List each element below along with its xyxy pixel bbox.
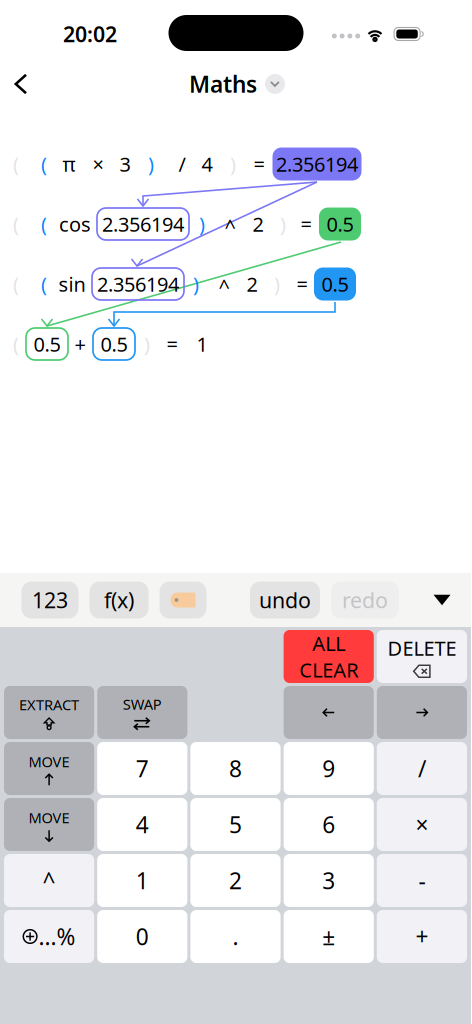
staticText: /: [418, 753, 426, 783]
staticText: 0.5: [100, 331, 127, 357]
button[interactable]: Delete: [377, 630, 467, 683]
staticText: (: [13, 211, 19, 237]
button[interactable]: 9: [284, 742, 374, 795]
button[interactable]: Extract: [4, 686, 94, 739]
staticText: 0.5: [326, 211, 353, 237]
staticText: =: [296, 271, 307, 297]
button[interactable]: 3: [284, 854, 374, 907]
button[interactable]: Move up: [4, 742, 94, 795]
staticText: ): [199, 211, 205, 237]
button[interactable]: Back: [0, 62, 44, 106]
staticText: cos: [59, 211, 91, 237]
staticText: (: [41, 271, 47, 297]
staticText: ): [148, 151, 154, 177]
staticText: Maths: [189, 69, 257, 99]
staticText: f(x): [104, 586, 134, 614]
staticText: ): [193, 271, 199, 297]
staticText: ): [274, 271, 280, 297]
staticText: 8: [229, 753, 242, 783]
button[interactable]: ×: [377, 798, 467, 851]
button[interactable]: Move right: [377, 686, 467, 739]
button[interactable]: 7: [97, 742, 187, 795]
staticText: +: [415, 921, 428, 951]
button[interactable]: Move left: [284, 686, 374, 739]
staticText: (: [41, 211, 47, 237]
button[interactable]: 0: [97, 910, 187, 963]
staticText: ): [144, 331, 150, 357]
staticText: 3: [119, 151, 130, 177]
button[interactable]: 8: [190, 742, 281, 795]
staticText: 6: [322, 809, 335, 839]
staticText: redo: [342, 586, 388, 614]
staticText: (: [41, 151, 47, 177]
staticText: 0: [136, 921, 149, 951]
staticText: (: [13, 151, 19, 177]
staticText: ±: [322, 921, 335, 951]
button[interactable]: Swap: [97, 686, 187, 739]
button[interactable]: f(x): [89, 581, 148, 618]
button[interactable]: More operators: [4, 910, 94, 963]
button[interactable]: -: [377, 854, 467, 907]
staticText: 123: [32, 586, 68, 614]
staticText: 2.356194: [97, 271, 179, 297]
button[interactable]: 4: [97, 798, 187, 851]
button[interactable]: Maths: [183, 60, 291, 108]
staticText: 20:02: [63, 20, 117, 48]
staticText: 2: [229, 865, 242, 895]
button[interactable]: Hide keyboard: [420, 578, 464, 622]
button[interactable]: 6: [284, 798, 374, 851]
staticText: 5: [229, 809, 242, 839]
staticText: MOVE: [29, 752, 70, 771]
staticText: 2: [252, 211, 263, 237]
staticText: 0.5: [33, 331, 60, 357]
staticText: ^: [43, 865, 56, 895]
button[interactable]: ^: [4, 854, 94, 907]
staticText: ): [230, 151, 236, 177]
staticText: (: [13, 331, 19, 357]
staticText: (: [13, 271, 19, 297]
staticText: 9: [322, 753, 335, 783]
staticText: DELETE: [387, 635, 456, 661]
staticText: 3: [322, 865, 335, 895]
staticText: -: [418, 865, 425, 895]
button[interactable]: ALL: [284, 630, 374, 683]
staticText: 1: [196, 331, 207, 357]
button[interactable]: 2: [190, 854, 281, 907]
staticText: .: [232, 921, 238, 951]
staticText: =: [166, 331, 177, 357]
button[interactable]: Tag: [159, 581, 206, 618]
staticText: SWAP: [123, 694, 162, 714]
staticText: ): [280, 211, 286, 237]
staticText: EXTRACT: [19, 695, 79, 714]
staticText: π: [62, 151, 75, 177]
button[interactable]: /: [377, 742, 467, 795]
button[interactable]: undo: [250, 581, 320, 618]
staticText: 0.5: [321, 271, 348, 297]
staticText: 1: [136, 865, 149, 895]
staticText: ×: [415, 809, 428, 839]
staticText: 4: [201, 151, 212, 177]
button[interactable]: +: [377, 910, 467, 963]
button[interactable]: 123: [21, 581, 78, 618]
button[interactable]: redo: [331, 581, 399, 618]
staticText: ALL: [312, 630, 345, 656]
staticText: CLEAR: [299, 656, 358, 683]
staticText: sin: [58, 271, 85, 297]
staticText: ...%: [39, 921, 76, 951]
staticText: 2.356194: [276, 151, 358, 177]
staticText: ^: [224, 213, 235, 239]
button[interactable]: .: [190, 910, 281, 963]
button[interactable]: 1: [97, 854, 187, 907]
staticText: /: [178, 151, 185, 177]
staticText: MOVE: [29, 808, 70, 827]
staticText: =: [300, 211, 311, 237]
staticText: 2.356194: [102, 211, 184, 237]
staticText: 2: [246, 271, 257, 297]
button[interactable]: Move down: [4, 798, 94, 851]
staticText: ×: [92, 151, 103, 177]
button[interactable]: 5: [190, 798, 281, 851]
button[interactable]: ±: [284, 910, 374, 963]
staticText: 7: [136, 753, 149, 783]
staticText: +: [74, 331, 85, 357]
staticText: ^: [218, 273, 229, 299]
